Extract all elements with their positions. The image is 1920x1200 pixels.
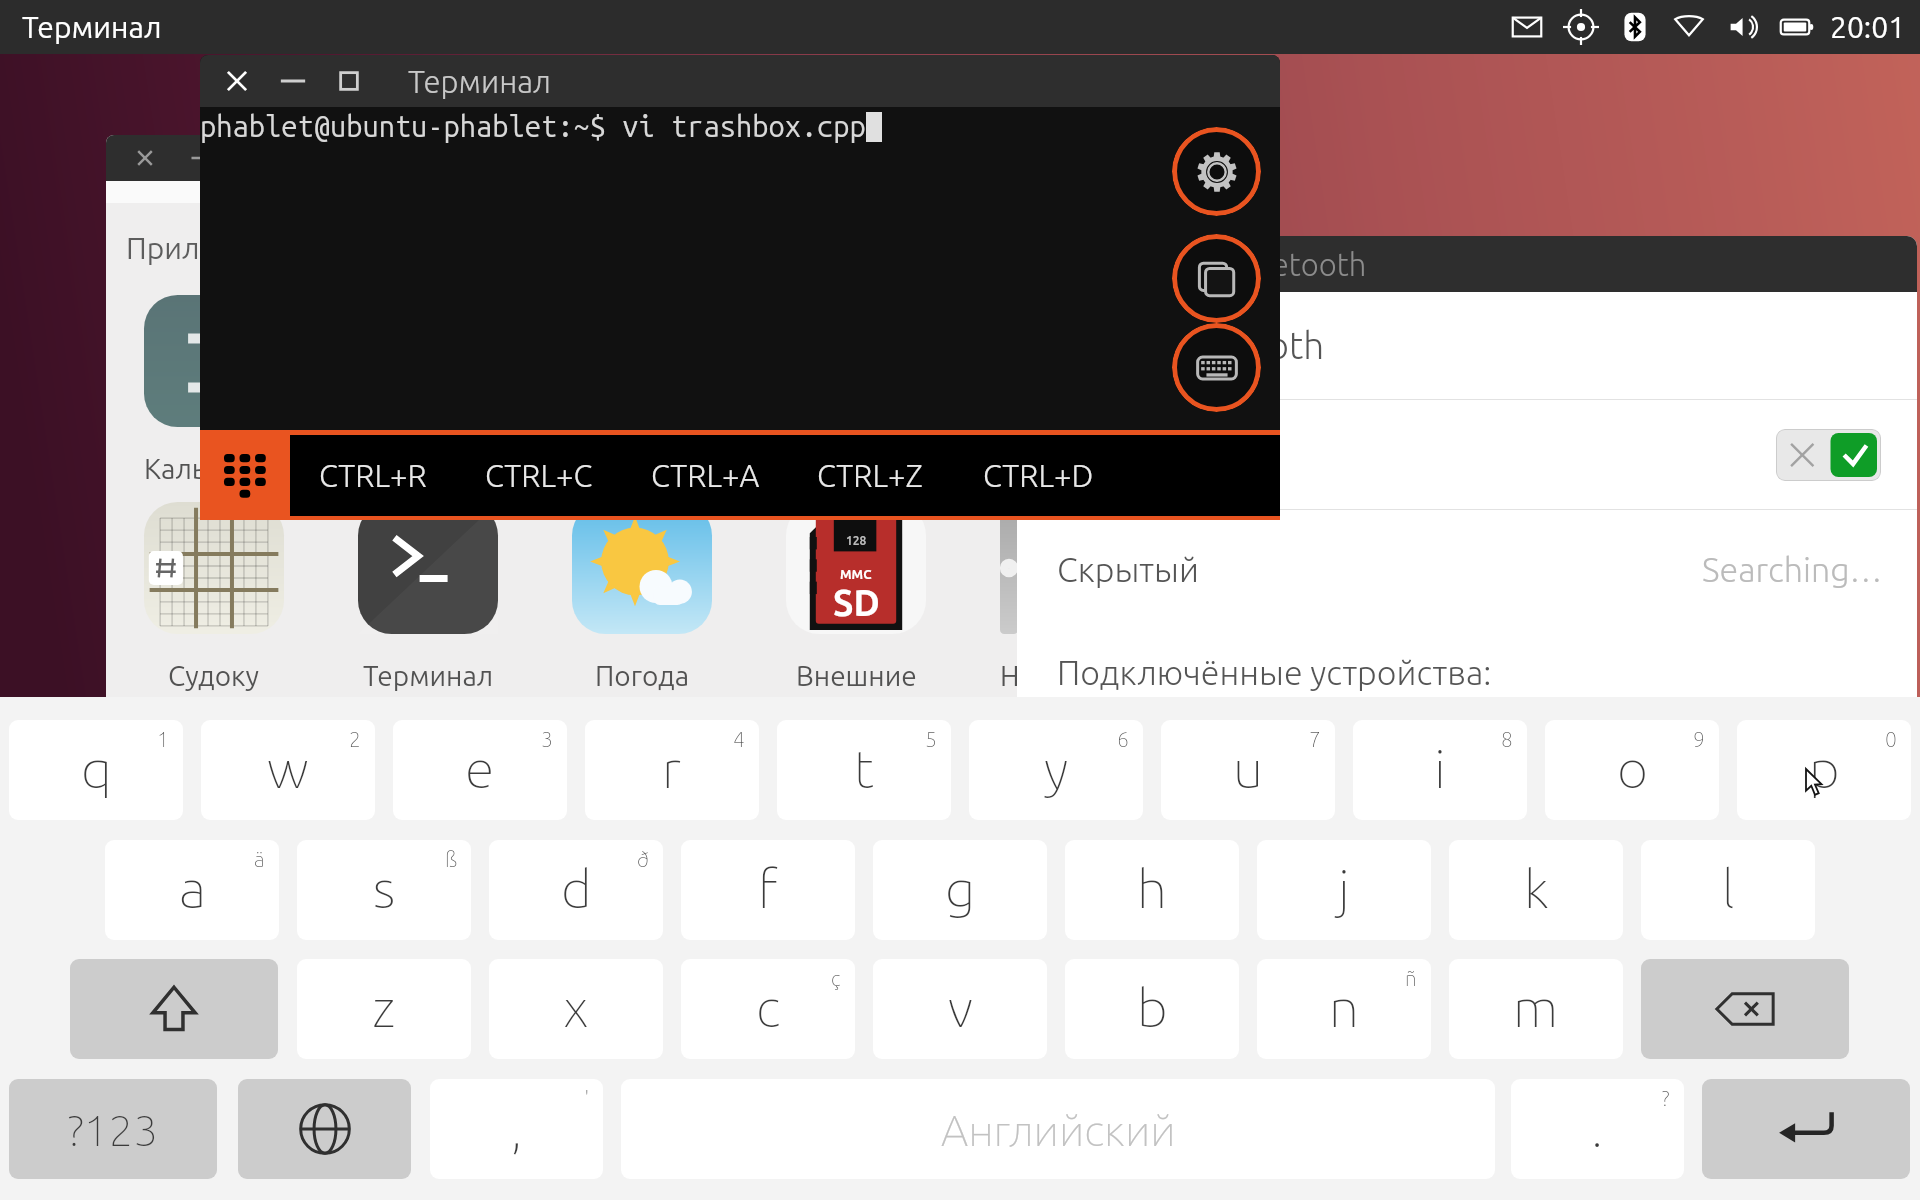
button[interactable]: q <box>9 720 183 820</box>
button[interactable]: Close <box>218 62 256 100</box>
staticText: j <box>1338 858 1350 919</box>
staticText: 128 <box>846 534 867 547</box>
staticText: v <box>948 977 973 1038</box>
button[interactable]: , <box>430 1079 603 1179</box>
staticText: w <box>267 738 309 799</box>
button[interactable]: z <box>297 959 471 1059</box>
button[interactable]: . <box>1511 1079 1684 1179</box>
button[interactable]: Location <box>1558 4 1604 50</box>
staticText: ð <box>637 847 649 871</box>
button[interactable]: i <box>1353 720 1527 820</box>
button[interactable]: CTRL+C <box>485 435 651 516</box>
button[interactable]: g <box>873 840 1047 940</box>
button[interactable]: CTRL+A <box>651 435 817 516</box>
staticText: ä <box>254 847 265 871</box>
staticText: o <box>1617 738 1648 799</box>
staticText: u <box>1233 738 1263 799</box>
button[interactable]: Английский <box>621 1079 1495 1179</box>
staticText: Подключённые устройства: <box>1057 653 1492 691</box>
staticText: b <box>1137 977 1168 1038</box>
button[interactable]: p <box>1737 720 1911 820</box>
button[interactable]: Bluetooth toggle <box>1776 429 1881 481</box>
button[interactable]: Settings <box>1172 127 1261 216</box>
staticText: CTRL+Z <box>817 458 923 493</box>
button[interactable]: Bluetooth <box>1612 4 1658 50</box>
button[interactable]: Keypad <box>200 430 290 520</box>
button[interactable]: v <box>873 959 1047 1059</box>
button[interactable]: c <box>681 959 855 1059</box>
button[interactable]: Maximize <box>330 62 368 100</box>
button[interactable]: Судоку <box>144 502 284 691</box>
button[interactable]: Enter <box>1702 1079 1910 1179</box>
button[interactable]: Bluetooth <box>1017 292 1917 399</box>
button[interactable]: u <box>1161 720 1335 820</box>
staticText: MMC <box>840 567 872 582</box>
staticText: ß <box>445 847 457 871</box>
button[interactable]: e <box>393 720 567 820</box>
button[interactable]: w <box>201 720 375 820</box>
staticText: Bluetooth <box>1158 325 1325 366</box>
button[interactable]: Messages <box>1504 4 1550 50</box>
staticText: , <box>511 1097 523 1158</box>
staticText: 1 <box>157 727 169 751</box>
button[interactable]: d <box>489 840 663 940</box>
button[interactable]: Close <box>128 141 162 175</box>
button[interactable]: MMC <box>786 502 926 691</box>
button[interactable]: t <box>777 720 951 820</box>
button[interactable]: Battery <box>1774 4 1820 50</box>
staticText: 5 <box>925 727 937 751</box>
button[interactable]: Погода <box>572 502 712 691</box>
button[interactable]: f <box>681 840 855 940</box>
button[interactable]: l <box>1641 840 1815 940</box>
button[interactable]: y <box>969 720 1143 820</box>
button[interactable]: ?123 <box>9 1079 217 1179</box>
staticText: CTRL+D <box>983 458 1094 493</box>
button[interactable]: h <box>1065 840 1239 940</box>
staticText: CTRL+C <box>485 458 593 493</box>
staticText: a <box>179 858 206 919</box>
staticText: Скрытый <box>1057 550 1199 588</box>
button[interactable]: Sound <box>1720 4 1766 50</box>
button[interactable]: Shift <box>70 959 278 1059</box>
button[interactable]: Minimize <box>184 141 218 175</box>
staticText: Терминал <box>408 64 551 99</box>
button[interactable]: m <box>1449 959 1623 1059</box>
button[interactable]: Minimize <box>274 62 312 100</box>
button[interactable]: Keyboard <box>1172 323 1261 412</box>
button[interactable]: Скрытый <box>1017 510 1917 628</box>
staticText: Калькулятор <box>144 453 284 484</box>
staticText: Searching… <box>1702 550 1883 588</box>
button[interactable]: CTRL+Z <box>817 435 983 516</box>
staticText: x <box>563 977 589 1038</box>
staticText: Английский <box>941 1105 1176 1154</box>
button[interactable]: Backspace <box>1641 959 1849 1059</box>
staticText: 3 <box>541 727 553 751</box>
staticText: Терминал <box>22 10 162 44</box>
button[interactable]: Часы <box>358 295 498 484</box>
button[interactable]: Терминал <box>358 502 498 691</box>
button[interactable]: 20:01 <box>1830 10 1906 44</box>
button[interactable]: k <box>1449 840 1623 940</box>
button[interactable]: b <box>1065 959 1239 1059</box>
staticText: ?123 <box>68 1105 159 1154</box>
staticText: 2 <box>349 727 361 751</box>
button[interactable]: Калькулятор <box>144 295 284 484</box>
button[interactable]: o <box>1545 720 1719 820</box>
staticText: 8 <box>1501 727 1513 751</box>
button[interactable]: r <box>585 720 759 820</box>
button[interactable]: s <box>297 840 471 940</box>
button[interactable]: x <box>489 959 663 1059</box>
button[interactable]: CTRL+R <box>319 435 485 516</box>
button[interactable]: Wi-Fi <box>1666 4 1712 50</box>
button[interactable]: a <box>105 840 279 940</box>
staticText: Настройки <box>1000 660 1018 691</box>
staticText: . <box>1591 1097 1604 1158</box>
button[interactable]: Language <box>238 1079 411 1179</box>
staticText: 7 <box>1309 727 1321 751</box>
button[interactable]: Tabs <box>1172 234 1261 323</box>
button[interactable]: j <box>1257 840 1431 940</box>
staticText: d <box>561 858 592 919</box>
button[interactable]: n <box>1257 959 1431 1059</box>
button[interactable]: CTRL+D <box>983 435 1149 516</box>
button[interactable]: Настройки <box>1000 502 1018 691</box>
